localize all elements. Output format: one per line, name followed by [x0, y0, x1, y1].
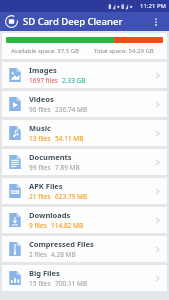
- button[interactable]: Videos: [2, 91, 167, 117]
- button[interactable]: Documents: [2, 149, 167, 175]
- staticText: 4.28 MB: [51, 250, 76, 259]
- button[interactable]: Compressed Files: [2, 236, 167, 262]
- staticText: 700.11 MB: [55, 279, 88, 288]
- staticText: Downloads: [29, 210, 71, 220]
- staticText: Available space: 37.5 GB: [11, 47, 79, 55]
- staticText: APK Files: [29, 181, 63, 191]
- staticText: 13 files: [29, 134, 51, 143]
- staticText: 21 files: [29, 192, 51, 201]
- staticText: 114.82 MB: [51, 221, 84, 230]
- staticText: 9 files: [29, 221, 47, 230]
- staticText: 11:21 PM: [140, 2, 166, 10]
- staticText: 7.89 MB: [55, 163, 80, 172]
- staticText: 2 files: [29, 250, 47, 259]
- button[interactable]: Available space: 37.5 GB: [2, 33, 167, 59]
- staticText: 236.74 MB: [55, 105, 88, 114]
- staticText: SD Card Deep Cleaner: [23, 15, 123, 28]
- staticText: 15 files: [29, 279, 51, 288]
- staticText: Videos: [29, 94, 54, 104]
- staticText: Music: [29, 123, 51, 133]
- staticText: Compressed Files: [29, 239, 94, 249]
- button[interactable]: Big Files: [2, 265, 167, 291]
- staticText: 1697 files: [29, 76, 58, 85]
- staticText: 90 files: [29, 105, 51, 114]
- staticText: 2.33 GB: [62, 76, 86, 85]
- staticText: Images: [29, 65, 57, 75]
- button[interactable]: Music: [2, 120, 167, 146]
- button[interactable]: Downloads: [2, 207, 167, 233]
- staticText: Documents: [29, 152, 72, 162]
- button[interactable]: More options: [148, 14, 164, 30]
- staticText: 99 files: [29, 163, 51, 172]
- staticText: 54.11 MB: [55, 134, 84, 143]
- button[interactable]: Images: [2, 62, 167, 88]
- staticText: Big Files: [29, 268, 60, 278]
- staticText: 623.79 MB: [55, 192, 88, 201]
- staticText: Total space: 54.29 GB: [94, 47, 154, 55]
- button[interactable]: APK Files: [2, 178, 167, 204]
